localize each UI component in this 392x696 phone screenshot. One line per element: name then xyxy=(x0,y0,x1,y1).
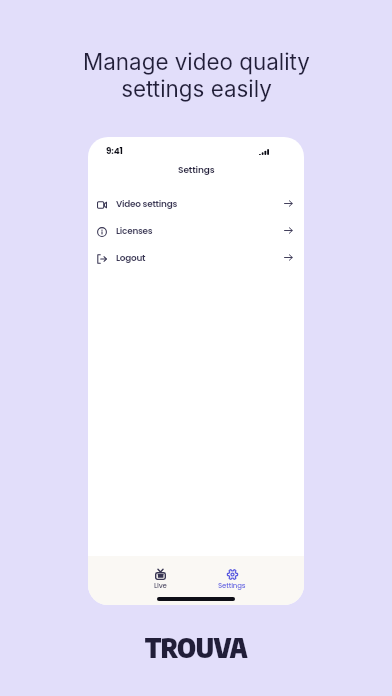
staticText: Licenses xyxy=(116,225,153,237)
button[interactable]: Settings xyxy=(211,556,253,590)
staticText: Settings xyxy=(178,164,215,177)
button[interactable]: Video settings xyxy=(88,190,304,217)
staticText: Settings xyxy=(218,581,246,590)
staticText: Video settings xyxy=(116,198,178,210)
staticText: Manage video quality settings easily xyxy=(83,48,310,102)
button[interactable]: Live xyxy=(139,556,181,590)
staticText: Live xyxy=(154,581,167,590)
staticText: 9:41 xyxy=(106,145,123,157)
staticText: TROUVA xyxy=(145,630,248,664)
button[interactable]: Licenses xyxy=(88,217,304,244)
button[interactable]: Logout xyxy=(88,244,304,271)
staticText: Logout xyxy=(116,252,146,264)
